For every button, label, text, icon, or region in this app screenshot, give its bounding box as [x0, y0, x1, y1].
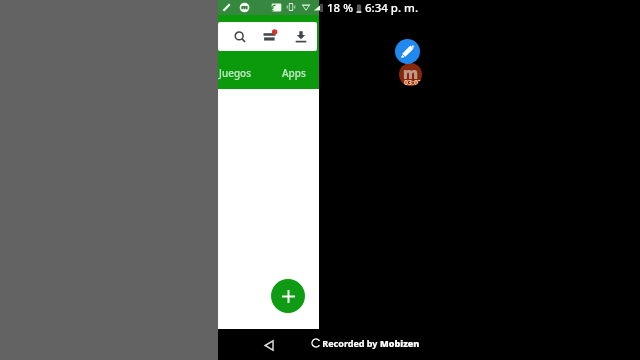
staticText: Apps: [282, 66, 306, 80]
staticText: Mobizen: [380, 337, 420, 349]
staticText: 03:07: [404, 78, 422, 86]
staticText: m: [403, 63, 419, 83]
staticText: 6:34 p. m.: [359, 0, 419, 15]
button[interactable]: Mobizen recorder: [399, 63, 422, 86]
button[interactable]: Juegos: [204, 61, 252, 85]
button[interactable]: My apps and games: [262, 29, 277, 44]
button[interactable]: Back: [264, 340, 275, 351]
staticText: 18 %: [327, 0, 353, 15]
button[interactable]: Downloads: [294, 29, 308, 43]
staticText: Recorded by: [320, 337, 380, 349]
button[interactable]: Add: [271, 279, 305, 313]
button[interactable]: Apps: [271, 61, 317, 85]
staticText: Juegos: [219, 66, 252, 80]
button[interactable]: Search: [218, 22, 317, 51]
button[interactable]: Edit: [395, 39, 420, 64]
button[interactable]: Search: [233, 30, 247, 44]
